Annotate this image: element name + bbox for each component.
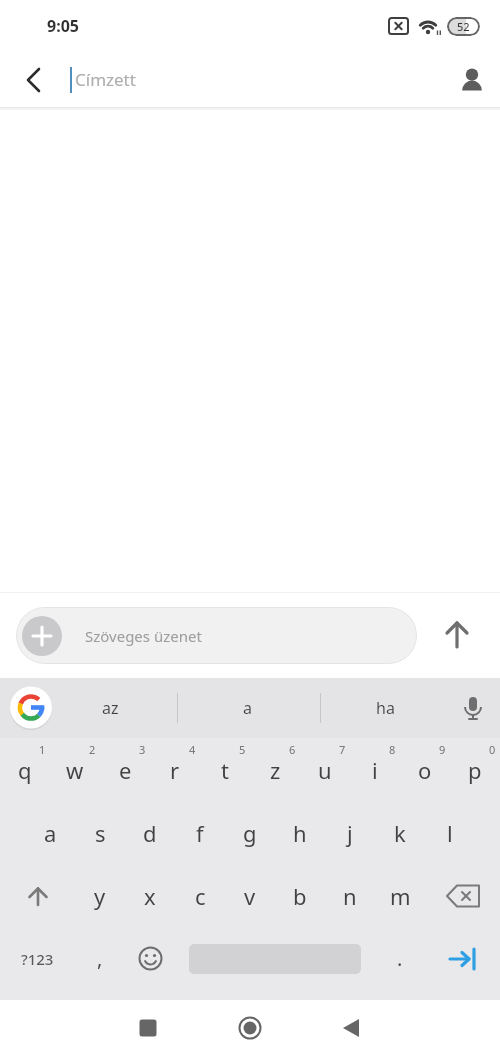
staticText: a [243, 697, 252, 719]
button[interactable]: ?123 [0, 927, 75, 990]
staticText: l [447, 818, 453, 848]
button[interactable]: ha [345, 678, 425, 738]
button[interactable]: v [225, 864, 275, 927]
button[interactable]: Szöveges üzenet [16, 607, 417, 664]
button[interactable] [456, 691, 490, 725]
button[interactable]: d [125, 801, 175, 864]
staticText: 5 [239, 742, 246, 757]
staticText: 0 [489, 742, 496, 757]
staticText: n [343, 881, 357, 911]
button[interactable]: k [375, 801, 425, 864]
staticText: r [170, 755, 180, 785]
button[interactable]: q [0, 738, 50, 801]
staticText: k [394, 818, 406, 848]
button[interactable]: m [375, 864, 425, 927]
staticText: y [94, 881, 106, 911]
staticText: d [143, 818, 157, 848]
staticText: ha [376, 697, 395, 719]
button[interactable]: j [325, 801, 375, 864]
button[interactable]: az [70, 678, 150, 738]
button[interactable] [441, 619, 473, 651]
staticText: 7 [339, 742, 346, 757]
staticText: v [244, 881, 256, 911]
staticText: 9:05 [47, 15, 79, 37]
staticText: u [318, 755, 332, 785]
staticText: 8 [389, 742, 396, 757]
button[interactable]: w [50, 738, 100, 801]
staticText: o [418, 755, 432, 785]
staticText: s [95, 818, 106, 848]
staticText: q [18, 755, 32, 785]
button[interactable]: . [375, 927, 425, 990]
button[interactable]: l [425, 801, 475, 864]
staticText: z [270, 755, 281, 785]
staticText: 6 [289, 742, 296, 757]
staticText: 52 [457, 19, 470, 34]
button[interactable] [425, 864, 500, 927]
staticText: m [390, 881, 411, 911]
staticText: a [44, 818, 57, 848]
staticText: 2 [89, 742, 96, 757]
staticText: 1 [39, 742, 46, 757]
button[interactable] [175, 927, 375, 990]
button[interactable] [450, 58, 494, 102]
button[interactable]: z [250, 738, 300, 801]
staticText: i [372, 755, 378, 785]
button[interactable] [10, 687, 52, 729]
button[interactable]: o [400, 738, 450, 801]
button[interactable]: e [100, 738, 150, 801]
staticText: c [195, 881, 206, 911]
button[interactable]: r [150, 738, 200, 801]
button[interactable]: t [200, 738, 250, 801]
staticText: x [144, 881, 156, 911]
staticText: ?123 [21, 949, 54, 969]
button[interactable] [230, 1008, 270, 1048]
staticText: g [243, 818, 257, 848]
button[interactable]: y [75, 864, 125, 927]
staticText: , [97, 945, 103, 972]
button[interactable]: a [25, 801, 75, 864]
staticText: . [397, 945, 403, 972]
staticText: 3 [139, 742, 146, 757]
button[interactable] [128, 1008, 168, 1048]
staticText: Szöveges üzenet [85, 626, 202, 646]
button[interactable] [0, 864, 75, 927]
staticText: f [196, 818, 204, 848]
button[interactable]: , [75, 927, 125, 990]
staticText: w [66, 755, 84, 785]
button[interactable]: p [450, 738, 500, 801]
button[interactable]: a [207, 678, 287, 738]
button[interactable] [331, 1008, 371, 1048]
staticText: b [293, 881, 307, 911]
staticText: j [347, 818, 353, 848]
staticText: t [221, 755, 229, 785]
staticText: 9 [439, 742, 446, 757]
button[interactable] [14, 60, 54, 100]
staticText: p [468, 755, 482, 785]
button[interactable]: s [75, 801, 125, 864]
button[interactable]: u [300, 738, 350, 801]
button[interactable]: b [275, 864, 325, 927]
button[interactable]: n [325, 864, 375, 927]
button[interactable]: g [225, 801, 275, 864]
button[interactable]: h [275, 801, 325, 864]
staticText: 4 [189, 742, 196, 757]
staticText: h [293, 818, 307, 848]
button[interactable]: i [350, 738, 400, 801]
staticText: e [119, 755, 132, 785]
button[interactable]: x [125, 864, 175, 927]
button[interactable]: c [175, 864, 225, 927]
staticText: az [102, 697, 119, 719]
button[interactable] [22, 616, 62, 656]
button[interactable] [425, 927, 500, 990]
button[interactable]: Címzett [75, 68, 136, 91]
button[interactable]: f [175, 801, 225, 864]
button[interactable] [125, 927, 175, 990]
